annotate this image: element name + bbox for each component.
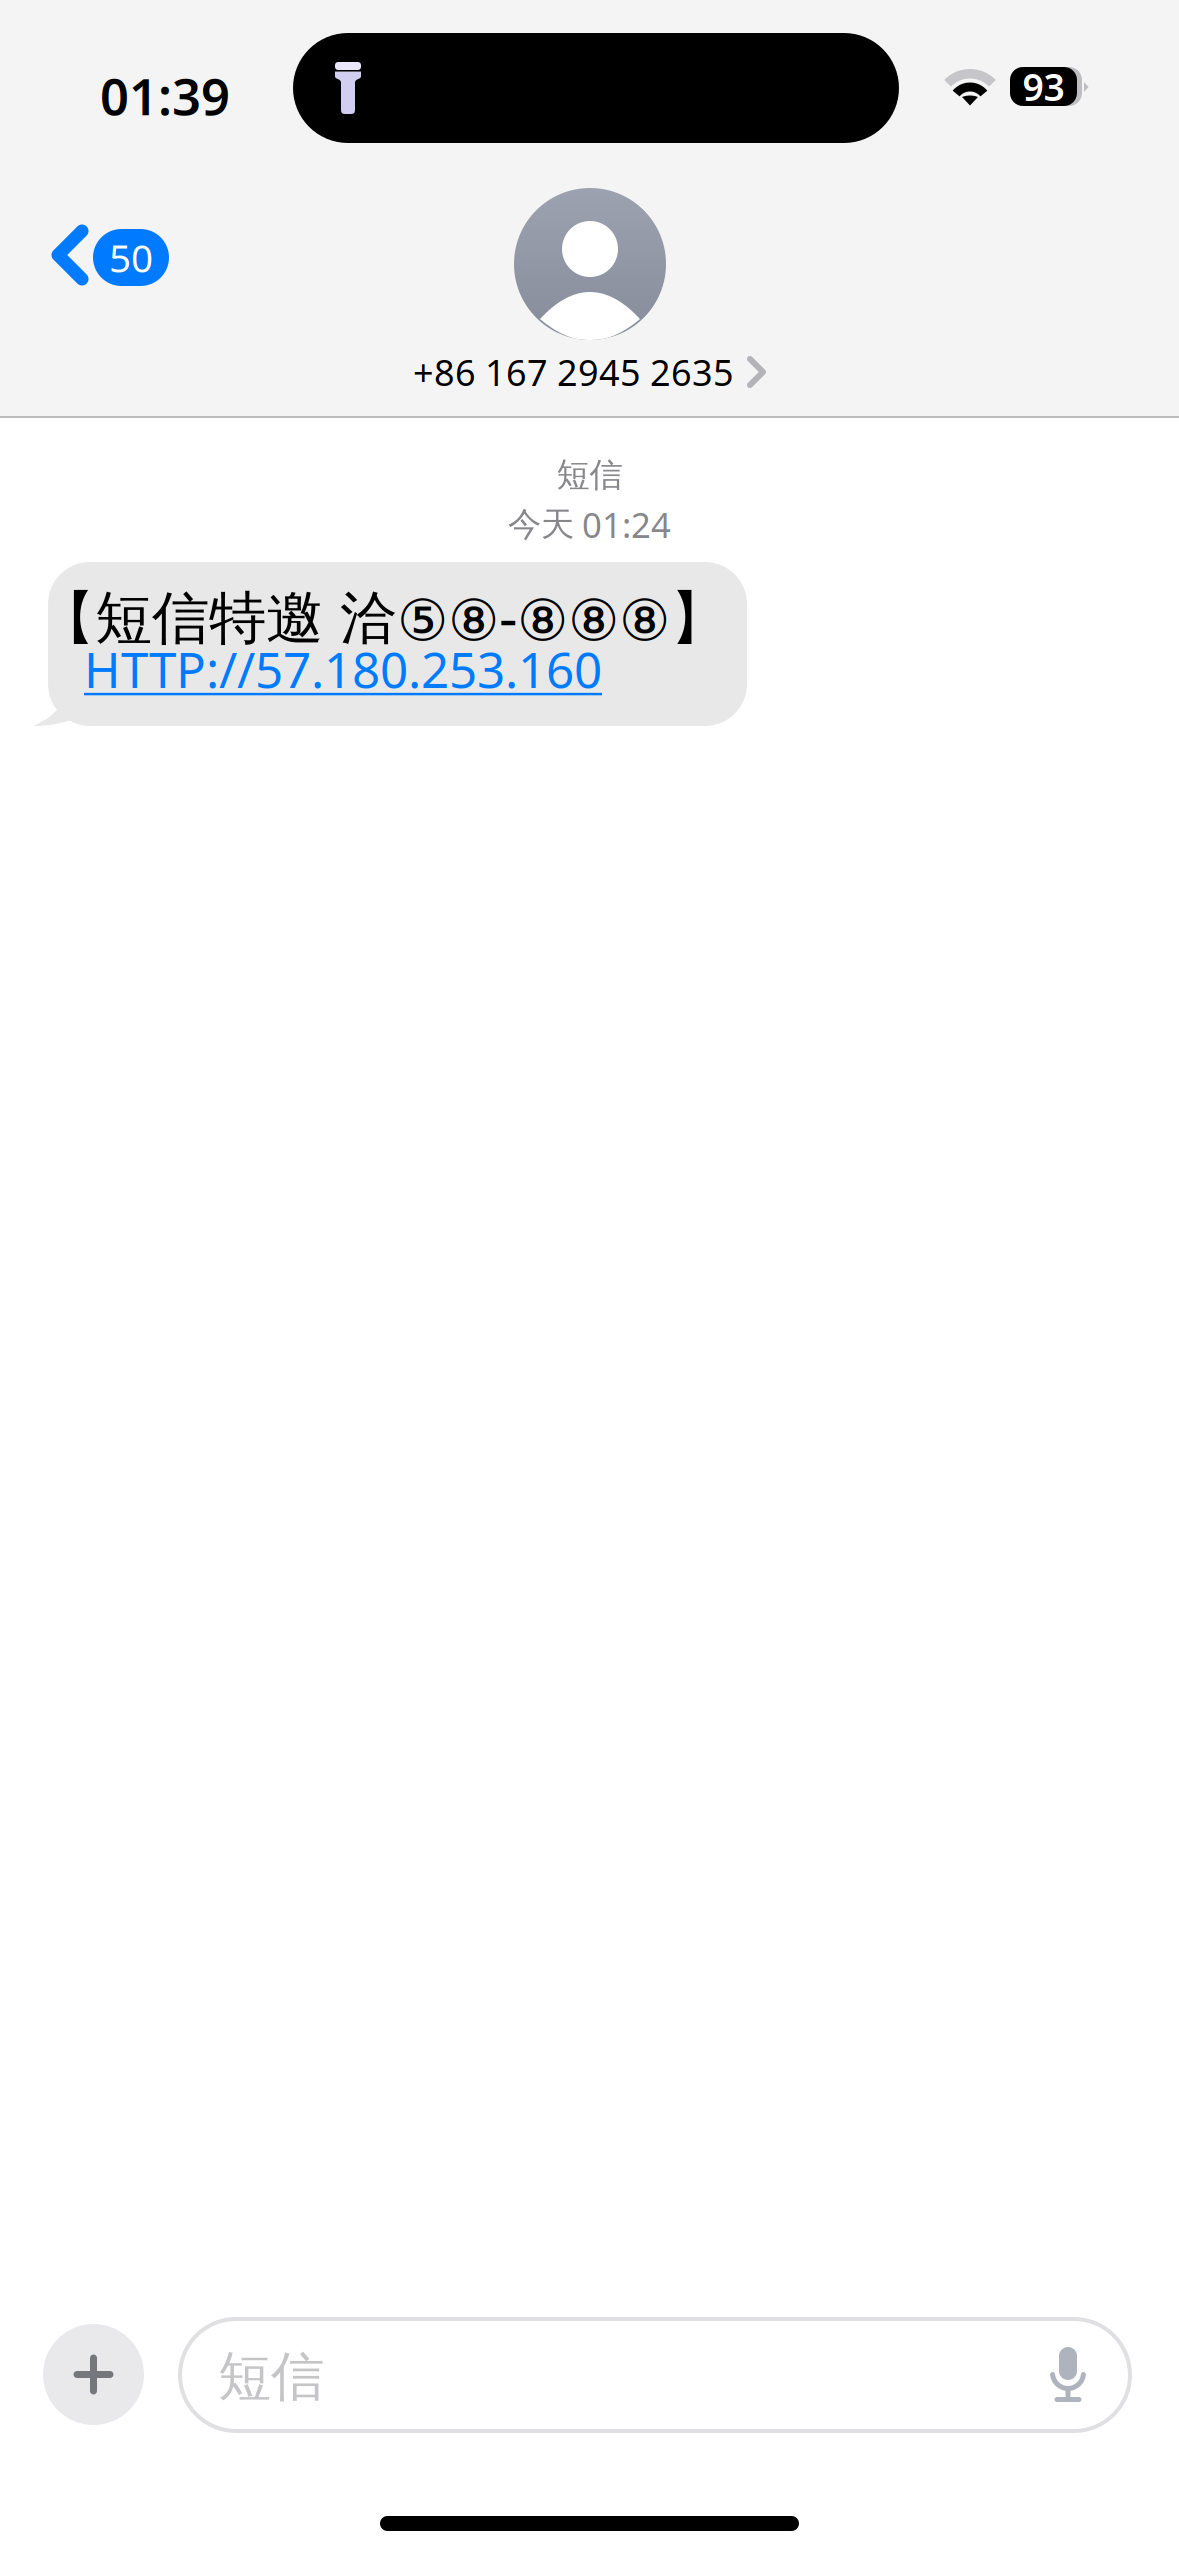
staticText: HTTP://57.180.253.160 xyxy=(84,636,602,701)
staticText: +86 167 2945 2635 xyxy=(413,348,734,396)
staticText: 【短信特邀 洽⑤⑧-⑧⑧⑧】 xyxy=(38,578,727,654)
staticText: 50 xyxy=(109,232,153,283)
staticText: 01:39 xyxy=(100,62,230,129)
button[interactable]: More options xyxy=(43,2324,144,2425)
button[interactable]: 50 xyxy=(41,193,221,313)
staticText: 93 xyxy=(1022,62,1064,111)
button[interactable]: HTTP://57.180.253.160 xyxy=(84,636,602,701)
staticText: 短信 xyxy=(218,2344,324,2409)
button[interactable]: +86 167 2945 2635 xyxy=(370,175,810,405)
staticText: 短信 xyxy=(556,454,622,495)
button[interactable]: 短信 xyxy=(180,2319,1130,2431)
staticText: 今天 xyxy=(508,504,574,545)
staticText: 01:24 xyxy=(582,501,671,547)
